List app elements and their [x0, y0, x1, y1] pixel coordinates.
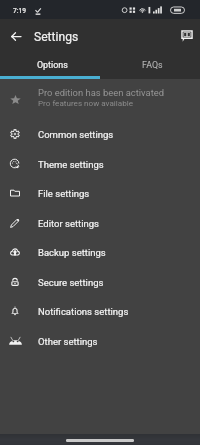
staticText: Theme settings: [38, 159, 104, 170]
staticText: Other settings: [38, 336, 98, 347]
staticText: Editor settings: [38, 218, 99, 229]
button[interactable]: Editor settings: [0, 208, 200, 238]
button[interactable]: Secure settings: [0, 267, 200, 297]
staticText: Notifications settings: [38, 306, 129, 317]
staticText: Secure settings: [38, 277, 104, 288]
button[interactable]: Options: [0, 53, 100, 79]
button[interactable]: Feedback: [175, 24, 199, 48]
staticText: Pro edition has been activated: [38, 87, 165, 98]
staticText: Settings: [34, 30, 79, 44]
button[interactable]: Notifications settings: [0, 296, 200, 326]
button[interactable]: Common settings: [0, 119, 200, 149]
staticText: FAQs: [142, 60, 163, 70]
button[interactable]: Pro edition has been activated: [0, 79, 200, 120]
button[interactable]: Other settings: [0, 326, 200, 356]
button[interactable]: Backup settings: [0, 237, 200, 267]
staticText: 7:19: [13, 7, 26, 15]
staticText: Options: [37, 60, 68, 70]
button[interactable]: Navigate up: [4, 24, 28, 48]
staticText: Pro features now available: [38, 98, 133, 107]
button[interactable]: File settings: [0, 178, 200, 208]
button[interactable]: FAQs: [100, 53, 200, 79]
staticText: Common settings: [38, 129, 114, 140]
button[interactable]: Theme settings: [0, 149, 200, 179]
staticText: File settings: [38, 188, 90, 199]
staticText: Backup settings: [38, 247, 106, 258]
